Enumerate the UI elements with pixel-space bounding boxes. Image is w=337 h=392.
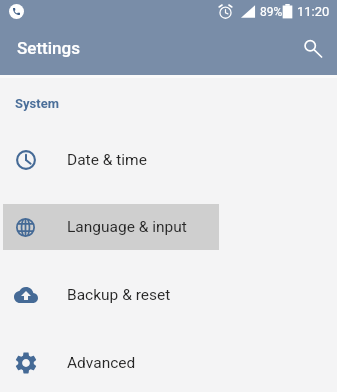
staticText: Backup & reset [67, 286, 171, 304]
button[interactable]: Advanced [0, 340, 337, 386]
staticText: Advanced [67, 354, 136, 372]
button[interactable]: Language & input [0, 204, 337, 250]
button[interactable]: Backup & reset [0, 272, 337, 318]
staticText: 11:20 [297, 4, 330, 19]
staticText: 89% [260, 5, 283, 19]
button[interactable]: Date & time [0, 137, 337, 183]
staticText: System [15, 96, 59, 111]
button[interactable]: Search [299, 35, 327, 63]
staticText: Date & time [67, 151, 147, 169]
staticText: Language & input [67, 218, 187, 236]
staticText: Settings [17, 38, 80, 58]
